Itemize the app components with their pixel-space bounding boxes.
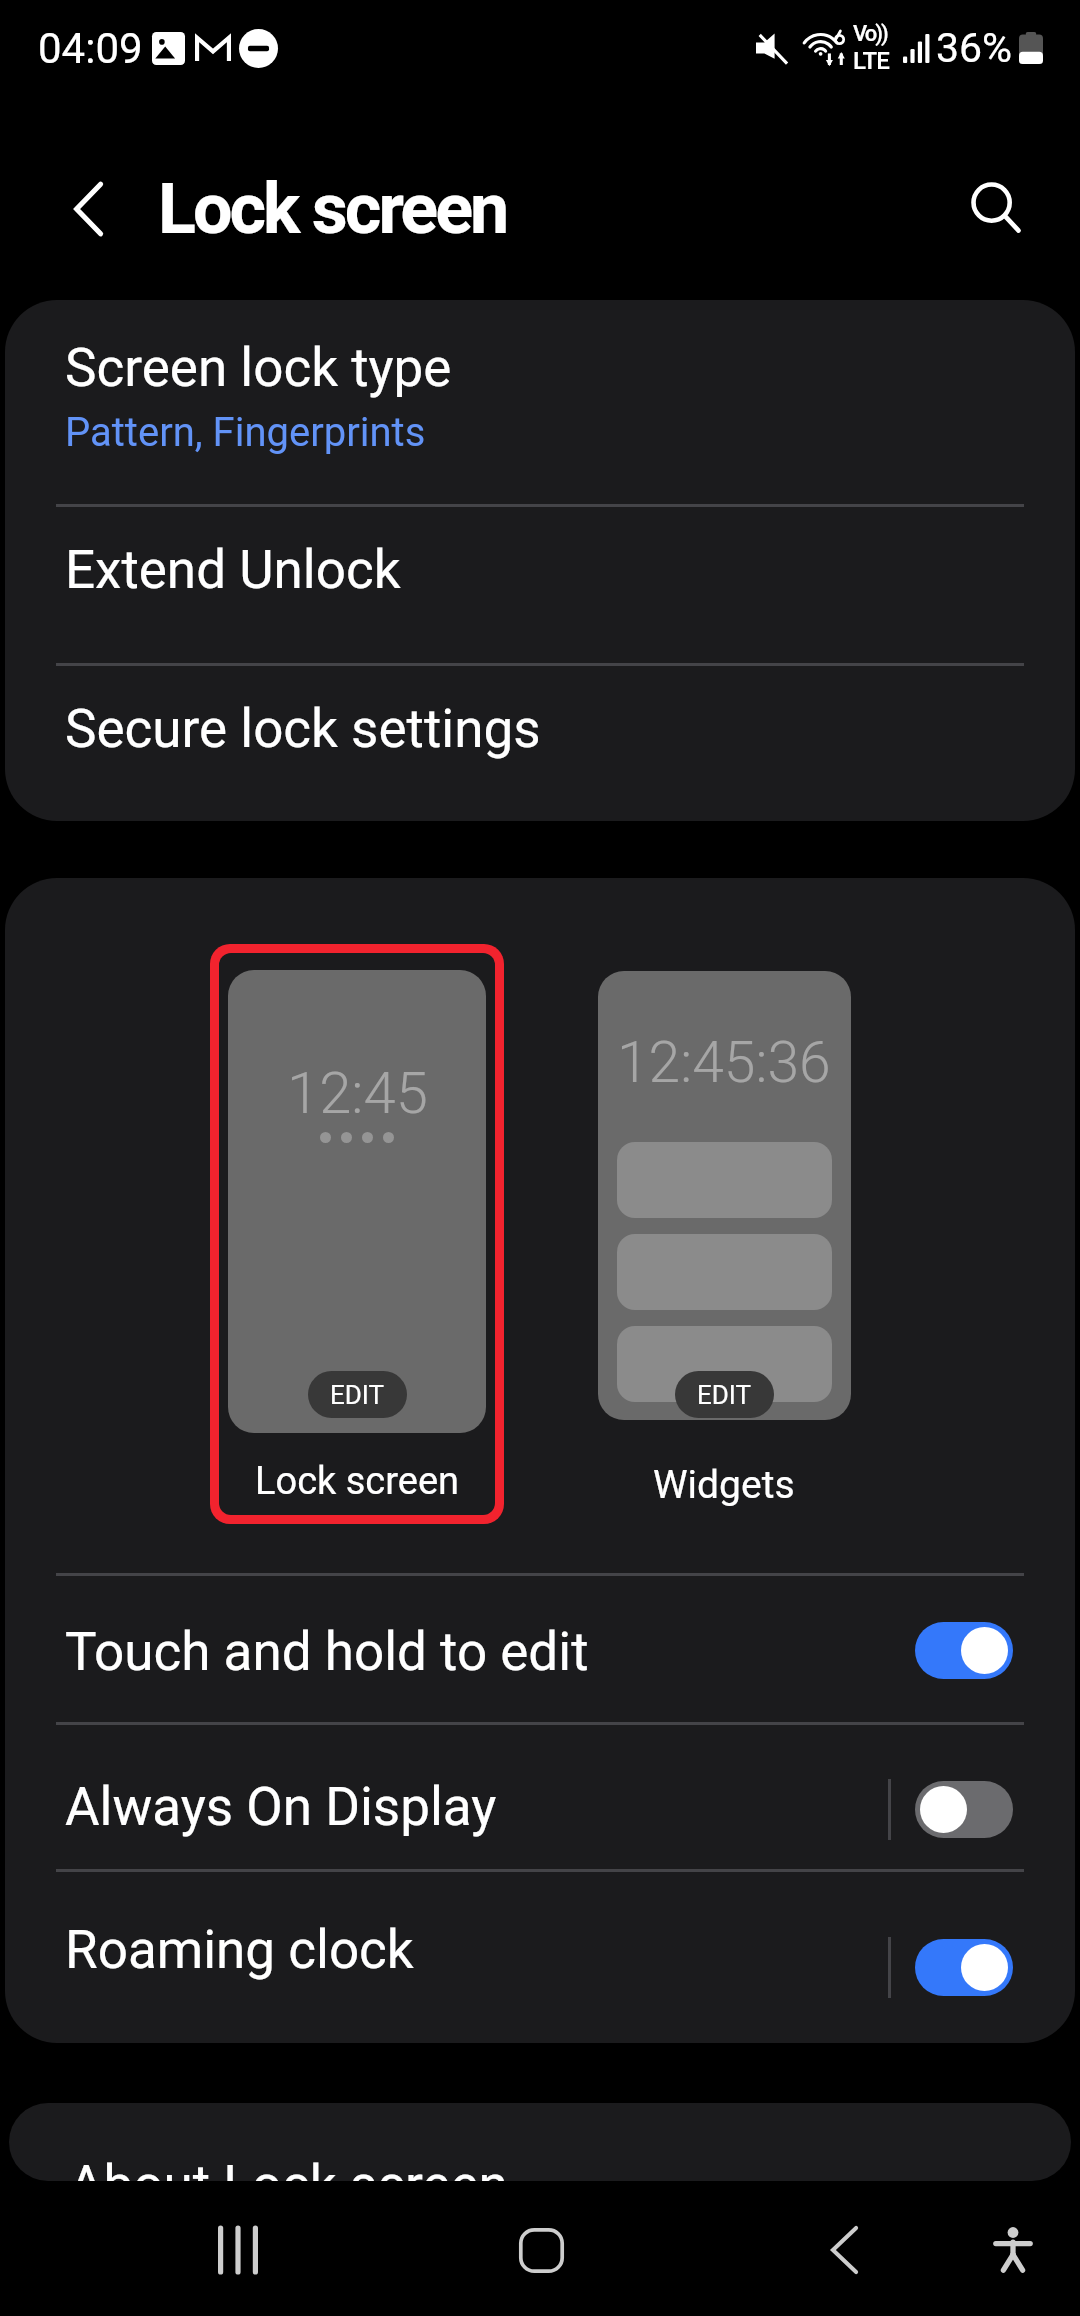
- button[interactable]: Touch and hold to edit: [5, 1576, 1075, 1722]
- staticText: 12:45:36: [617, 1029, 831, 1096]
- staticText: Lock screen: [255, 1459, 460, 1504]
- staticText: Vo)): [853, 21, 887, 47]
- staticText: Extend Unlock: [65, 539, 401, 601]
- staticText: 12:45: [287, 1059, 428, 1127]
- staticText: Widgets: [653, 1462, 795, 1508]
- button[interactable]: On: [915, 1622, 1013, 1679]
- button[interactable]: Home: [481, 2184, 601, 2316]
- button[interactable]: On: [915, 1939, 1013, 1996]
- staticText: 04:09: [38, 24, 143, 73]
- button[interactable]: EDIT: [675, 1371, 774, 1418]
- button[interactable]: Extend Unlock: [5, 507, 1075, 663]
- staticText: LTE: [853, 47, 889, 75]
- staticText: Roaming clock: [65, 1919, 414, 1981]
- button[interactable]: Screen lock type: [5, 300, 1075, 504]
- staticText: Lock screen: [158, 168, 507, 250]
- button[interactable]: 12:45:36: [577, 944, 871, 1508]
- staticText: EDIT: [330, 1380, 385, 1410]
- staticText: Secure lock settings: [65, 698, 541, 760]
- button[interactable]: Recents: [178, 2184, 298, 2316]
- staticText: Touch and hold to edit: [65, 1621, 589, 1683]
- staticText: About Lock screen: [69, 2154, 508, 2181]
- button[interactable]: Back: [784, 2184, 904, 2316]
- button[interactable]: Accessibility: [953, 2184, 1073, 2316]
- button[interactable]: Off: [915, 1781, 1013, 1838]
- button[interactable]: Back: [48, 169, 128, 249]
- staticText: Screen lock type: [65, 337, 452, 399]
- button[interactable]: Secure lock settings: [5, 666, 1075, 821]
- staticText: Pattern, Fingerprints: [65, 409, 426, 456]
- button[interactable]: About Lock screen: [9, 2103, 1071, 2181]
- button[interactable]: Always On Display: [5, 1725, 1075, 1869]
- staticText: EDIT: [697, 1380, 752, 1410]
- staticText: 36%: [936, 24, 1013, 72]
- button[interactable]: 12:45: [219, 953, 495, 1515]
- button[interactable]: EDIT: [308, 1371, 407, 1418]
- button[interactable]: Roaming clock: [5, 1872, 1075, 2043]
- staticText: Always On Display: [65, 1776, 497, 1838]
- button[interactable]: Search: [952, 163, 1042, 253]
